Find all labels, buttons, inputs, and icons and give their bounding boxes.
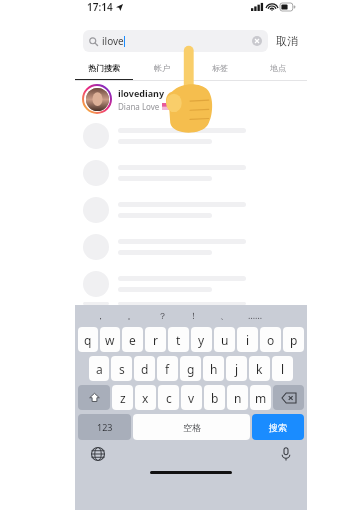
staticText: 地点 bbox=[270, 63, 286, 73]
button[interactable]: Backspace bbox=[273, 385, 304, 410]
staticText: 17:14 bbox=[87, 0, 113, 14]
staticText: ？ bbox=[158, 310, 167, 321]
staticText: v bbox=[188, 390, 195, 406]
staticText: m bbox=[255, 390, 267, 406]
staticText: q bbox=[84, 332, 92, 348]
staticText: d bbox=[141, 361, 149, 377]
staticText: 标签 bbox=[212, 63, 228, 73]
button[interactable]: t bbox=[168, 327, 189, 352]
button[interactable]: ！ bbox=[178, 305, 209, 325]
staticText: 空格 bbox=[183, 422, 201, 433]
button[interactable]: g bbox=[180, 356, 201, 381]
staticText: 帐户 bbox=[154, 63, 170, 73]
button[interactable]: b bbox=[204, 385, 225, 410]
button[interactable]: 帐户 bbox=[133, 56, 191, 79]
button[interactable]: i bbox=[237, 327, 258, 352]
staticText: b bbox=[211, 390, 219, 406]
staticText: n bbox=[234, 390, 242, 406]
staticText: t bbox=[176, 332, 181, 348]
staticText: g bbox=[187, 361, 195, 377]
button[interactable]: x bbox=[135, 385, 156, 410]
staticText: i bbox=[246, 332, 250, 348]
button[interactable]: j bbox=[226, 356, 247, 381]
button[interactable]: n bbox=[227, 385, 248, 410]
staticText: ！ bbox=[189, 310, 198, 321]
staticText: j bbox=[235, 361, 239, 377]
staticText: 、 bbox=[220, 310, 229, 321]
button[interactable]: w bbox=[100, 327, 120, 352]
button[interactable]: 123 bbox=[78, 414, 131, 440]
staticText: x bbox=[142, 390, 149, 406]
staticText: o bbox=[267, 332, 275, 348]
button[interactable]: 地点 bbox=[249, 56, 307, 79]
staticText: Diana Love bbox=[118, 101, 162, 112]
button[interactable]: q bbox=[78, 327, 98, 352]
staticText: k bbox=[256, 361, 263, 377]
button[interactable]: 标签 bbox=[191, 56, 249, 79]
button[interactable]: Voice input bbox=[281, 447, 291, 461]
staticText: 取消 bbox=[276, 34, 298, 48]
button[interactable]: u bbox=[214, 327, 235, 352]
button[interactable]: h bbox=[203, 356, 224, 381]
staticText: e bbox=[129, 332, 136, 348]
button[interactable]: a bbox=[89, 356, 109, 381]
button[interactable]: Shift bbox=[78, 385, 110, 410]
staticText: 123 bbox=[97, 421, 113, 433]
button[interactable]: e bbox=[122, 327, 143, 352]
button[interactable]: 。 bbox=[116, 305, 147, 325]
button[interactable]: 、 bbox=[209, 305, 240, 325]
button[interactable]: ？ bbox=[147, 305, 178, 325]
staticText: y bbox=[198, 332, 205, 348]
button[interactable]: 搜索 bbox=[252, 414, 304, 440]
button[interactable]: p bbox=[283, 327, 304, 352]
staticText: ilove bbox=[102, 34, 124, 48]
staticText: z bbox=[120, 390, 126, 406]
staticText: ， bbox=[96, 310, 105, 321]
staticText: r bbox=[153, 332, 158, 348]
staticText: p bbox=[290, 332, 298, 348]
button[interactable]: ilove bbox=[83, 30, 268, 52]
staticText: 搜索 bbox=[269, 422, 287, 433]
button[interactable]: f bbox=[157, 356, 178, 381]
staticText: …… bbox=[248, 309, 263, 321]
button[interactable]: d bbox=[134, 356, 155, 381]
staticText: u bbox=[221, 332, 229, 348]
button[interactable]: m bbox=[250, 385, 271, 410]
staticText: w bbox=[105, 332, 115, 348]
button[interactable]: …… bbox=[240, 305, 271, 325]
button[interactable]: k bbox=[249, 356, 270, 381]
staticText: a bbox=[96, 361, 103, 377]
button[interactable]: c bbox=[158, 385, 179, 410]
button[interactable]: v bbox=[181, 385, 202, 410]
button[interactable]: ， bbox=[85, 305, 116, 325]
button[interactable]: 空格 bbox=[133, 414, 250, 440]
button[interactable]: Switch keyboard bbox=[91, 447, 105, 461]
button[interactable]: s bbox=[111, 356, 132, 381]
staticText: ilovediany bbox=[118, 87, 165, 99]
staticText: 热门搜索 bbox=[88, 63, 120, 73]
staticText: l bbox=[281, 361, 285, 377]
staticText: f bbox=[165, 361, 170, 377]
button[interactable]: 热门搜索 bbox=[75, 56, 133, 79]
staticText: s bbox=[119, 361, 125, 377]
button[interactable]: r bbox=[145, 327, 166, 352]
button[interactable]: y bbox=[191, 327, 212, 352]
button[interactable]: o bbox=[260, 327, 281, 352]
staticText: c bbox=[166, 390, 172, 406]
staticText: 。 bbox=[127, 310, 136, 321]
button[interactable]: l bbox=[272, 356, 293, 381]
button[interactable]: Clear text bbox=[252, 36, 262, 46]
button[interactable]: ilovediany bbox=[75, 81, 307, 117]
button[interactable]: z bbox=[112, 385, 133, 410]
staticText: h bbox=[210, 361, 218, 377]
button[interactable]: 取消 bbox=[275, 34, 299, 48]
